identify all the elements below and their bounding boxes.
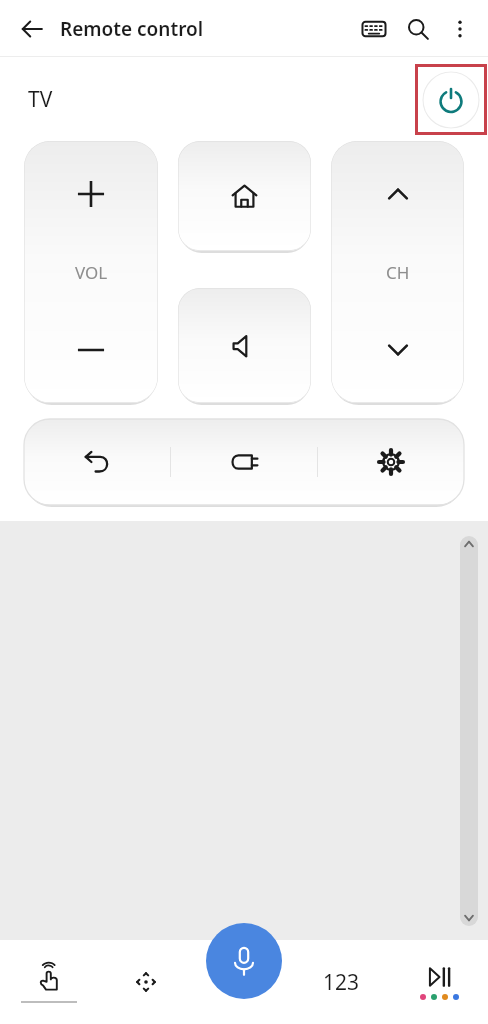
button[interactable]: More options bbox=[440, 9, 480, 49]
button[interactable]: Voice bbox=[206, 923, 282, 999]
button[interactable]: Back bbox=[24, 419, 170, 505]
button[interactable]: Scroll bbox=[0, 521, 488, 940]
button[interactable]: Home bbox=[178, 141, 311, 251]
staticText: VOL bbox=[75, 261, 108, 284]
staticText: TV bbox=[28, 85, 53, 114]
staticText: 123 bbox=[323, 968, 360, 997]
button[interactable]: Playback bbox=[390, 940, 488, 1024]
button[interactable]: Touchpad bbox=[0, 940, 97, 1024]
button[interactable]: Power bbox=[418, 67, 484, 132]
button[interactable]: Keyboard bbox=[352, 7, 396, 51]
button[interactable] bbox=[371, 323, 425, 377]
button[interactable]: Settings bbox=[318, 419, 464, 505]
staticText: CH bbox=[386, 261, 410, 284]
button[interactable] bbox=[64, 323, 118, 377]
button[interactable]: Back bbox=[10, 7, 54, 51]
button[interactable]: Source bbox=[171, 419, 317, 505]
button[interactable]: Mute bbox=[178, 288, 311, 403]
button[interactable]: Search bbox=[396, 7, 440, 51]
button[interactable] bbox=[371, 167, 425, 221]
button[interactable]: Numbers bbox=[292, 940, 390, 1024]
button[interactable]: D-pad bbox=[97, 940, 194, 1024]
staticText: Remote control bbox=[60, 16, 204, 42]
button[interactable] bbox=[64, 167, 118, 221]
button[interactable]: Scroll bbox=[460, 536, 478, 926]
